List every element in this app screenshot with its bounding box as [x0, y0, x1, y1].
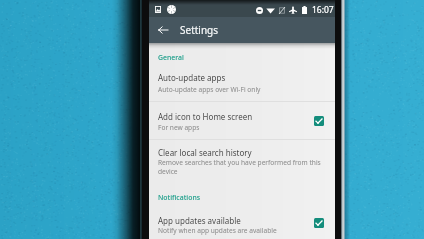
staticText: Add icon to Home screen — [158, 111, 253, 122]
button[interactable]: Toggle setting — [314, 116, 324, 126]
staticText: Notifications — [158, 193, 201, 202]
button[interactable] — [149, 42, 335, 101]
staticText: For new apps — [158, 123, 298, 132]
staticText: Settings — [180, 23, 219, 37]
staticText: Auto-update apps over Wi-Fi only — [158, 85, 328, 94]
staticText: Notify when app updates are available — [158, 226, 328, 235]
staticText: 16:07 — [312, 4, 334, 16]
button[interactable] — [149, 102, 335, 139]
button[interactable]: Back — [155, 22, 171, 38]
button[interactable]: Toggle setting — [314, 218, 324, 228]
staticText: Clear local search history — [158, 147, 252, 158]
staticText: General — [158, 53, 184, 62]
staticText: App updates available — [158, 215, 241, 226]
staticText: Remove searches that you have performed … — [158, 158, 330, 176]
button[interactable] — [149, 140, 335, 190]
button[interactable] — [149, 210, 335, 239]
staticText: Auto-update apps — [158, 72, 226, 83]
